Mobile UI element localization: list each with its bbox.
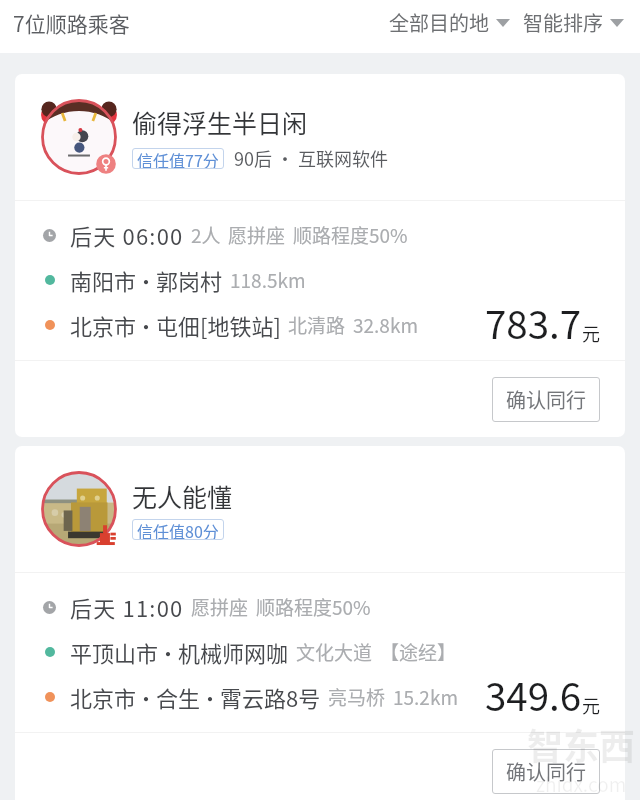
- staticText: 南阳市·郭岗村: [70, 264, 223, 296]
- button[interactable]: 全部目的地: [389, 0, 510, 45]
- staticText: 全部目的地: [389, 8, 489, 37]
- staticText: 7位顺路乘客: [13, 8, 130, 38]
- staticText: 顺路程度50%: [293, 221, 408, 249]
- staticText: 349.6: [485, 666, 582, 722]
- staticText: 118.5km: [230, 266, 306, 294]
- staticText: 北京市·屯佃[地铁站]: [70, 309, 281, 341]
- button[interactable]: 确认同行: [492, 377, 600, 422]
- staticText: 北清路: [288, 311, 346, 339]
- staticText: 信任值77分: [137, 148, 219, 169]
- staticText: 后天 11:00: [70, 591, 184, 623]
- button[interactable]: Passenger avatar: [15, 446, 625, 800]
- staticText: 偷得浮生半日闲: [132, 104, 308, 140]
- staticText: 信任值80分: [137, 519, 219, 540]
- staticText: 783.7: [485, 294, 582, 350]
- staticText: 愿拼座: [191, 593, 249, 621]
- staticText: zhidx.com: [536, 770, 627, 798]
- staticText: 亮马桥: [328, 683, 386, 711]
- button[interactable]: Passenger avatar: [41, 463, 119, 549]
- staticText: 北京市·合生·霄云路8号: [70, 681, 321, 713]
- staticText: 90后 · 互联网软件: [234, 145, 389, 171]
- staticText: 无人能懂: [132, 478, 233, 514]
- staticText: 32.8km: [353, 311, 418, 339]
- staticText: 平顶山市·机械师网咖: [70, 636, 289, 668]
- button[interactable]: 智能排序: [523, 0, 624, 45]
- staticText: 文化大道: [296, 638, 373, 666]
- staticText: 确认同行: [506, 757, 586, 786]
- staticText: 15.2km: [393, 683, 458, 711]
- button[interactable]: Passenger avatar: [15, 74, 625, 437]
- button[interactable]: 确认同行: [492, 749, 600, 794]
- staticText: 确认同行: [506, 385, 586, 414]
- staticText: 元: [582, 692, 600, 718]
- staticText: 【途经】: [380, 638, 457, 666]
- staticText: 智东西: [527, 718, 636, 770]
- staticText: 顺路程度50%: [256, 593, 371, 621]
- staticText: 2人: [191, 221, 221, 249]
- staticText: 智能排序: [523, 8, 603, 37]
- button[interactable]: Passenger avatar: [41, 91, 119, 177]
- staticText: 元: [582, 320, 600, 346]
- staticText: 后天 06:00: [70, 219, 184, 251]
- staticText: 愿拼座: [228, 221, 286, 249]
